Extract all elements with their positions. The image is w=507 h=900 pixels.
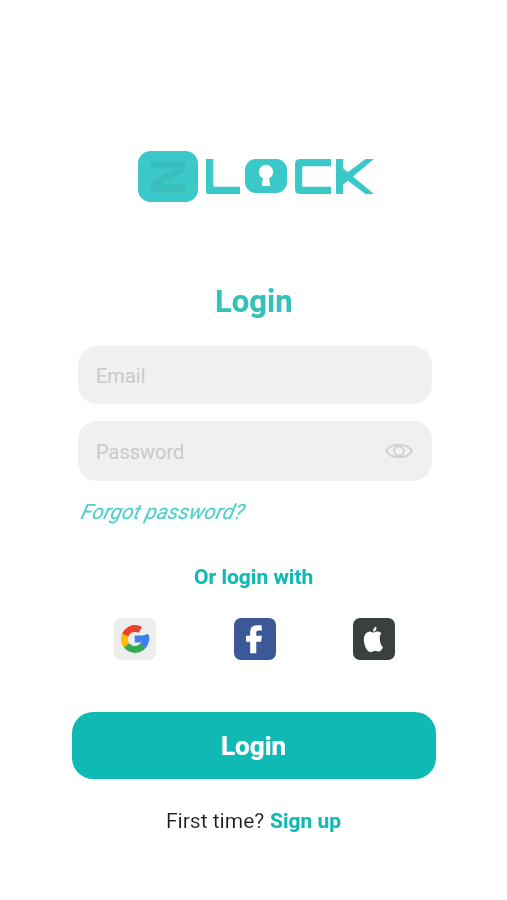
button[interactable]: Sign up: [270, 809, 342, 834]
staticText: Sign up: [270, 809, 342, 834]
staticText: Or login with: [194, 565, 314, 590]
staticText: First time?: [166, 809, 270, 834]
other: ZLOCK: [138, 148, 374, 204]
button[interactable]: Sign in with Apple: [353, 618, 395, 660]
staticText: Login: [215, 283, 293, 319]
staticText: Forgot password?: [80, 500, 243, 525]
button[interactable]: Password: [78, 421, 432, 481]
button[interactable]: Show password: [384, 436, 414, 466]
button[interactable]: Email: [78, 346, 432, 404]
staticText: Password: [96, 440, 185, 463]
button[interactable]: Login: [72, 712, 436, 779]
button[interactable]: Sign in with Facebook: [234, 618, 276, 660]
button[interactable]: Sign in with Google: [114, 618, 156, 660]
staticText: Login: [221, 731, 287, 761]
button[interactable]: Forgot password?: [80, 500, 243, 525]
staticText: Email: [96, 364, 146, 387]
